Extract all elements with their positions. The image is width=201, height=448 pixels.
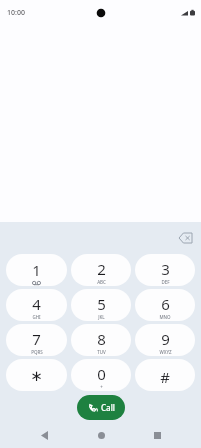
- staticText: WXYZ: [159, 349, 172, 355]
- staticText: PQRS: [31, 349, 43, 355]
- staticText: JKL: [98, 314, 105, 320]
- staticText: 6: [161, 294, 170, 314]
- button[interactable]: Recent apps: [145, 423, 169, 447]
- staticText: GHI: [32, 314, 41, 320]
- button[interactable]: 5: [71, 289, 131, 321]
- staticText: +: [100, 384, 103, 390]
- button[interactable]: ∗: [6, 359, 67, 391]
- staticText: #: [160, 367, 170, 387]
- button[interactable]: Back: [32, 423, 56, 447]
- button[interactable]: Home: [89, 423, 113, 447]
- staticText: 5: [97, 294, 106, 314]
- staticText: TUV: [97, 349, 106, 355]
- button[interactable]: 9: [135, 324, 195, 356]
- staticText: 9: [161, 329, 170, 349]
- button[interactable]: 6: [135, 289, 195, 321]
- button[interactable]: 3: [135, 254, 195, 286]
- staticText: ABC: [97, 279, 106, 285]
- staticText: DEF: [161, 279, 170, 285]
- button[interactable]: 2: [71, 254, 131, 286]
- staticText: 4: [32, 294, 41, 314]
- staticText: 0: [97, 364, 106, 384]
- staticText: 8: [97, 329, 106, 349]
- button[interactable]: 0: [71, 359, 131, 391]
- button[interactable]: 1: [6, 254, 67, 286]
- staticText: ∗: [30, 367, 43, 384]
- staticText: 10:00: [7, 8, 25, 18]
- button[interactable]: 4: [6, 289, 67, 321]
- button[interactable]: 8: [71, 324, 131, 356]
- button[interactable]: Backspace: [175, 228, 195, 248]
- staticText: 2: [97, 259, 106, 279]
- staticText: Call: [101, 402, 115, 413]
- button[interactable]: Call: [77, 395, 125, 420]
- staticText: 7: [32, 329, 41, 349]
- staticText: 3: [161, 259, 170, 279]
- staticText: MNO: [159, 314, 171, 320]
- staticText: 1: [32, 260, 41, 280]
- button[interactable]: #: [135, 359, 195, 391]
- button[interactable]: 7: [6, 324, 67, 356]
